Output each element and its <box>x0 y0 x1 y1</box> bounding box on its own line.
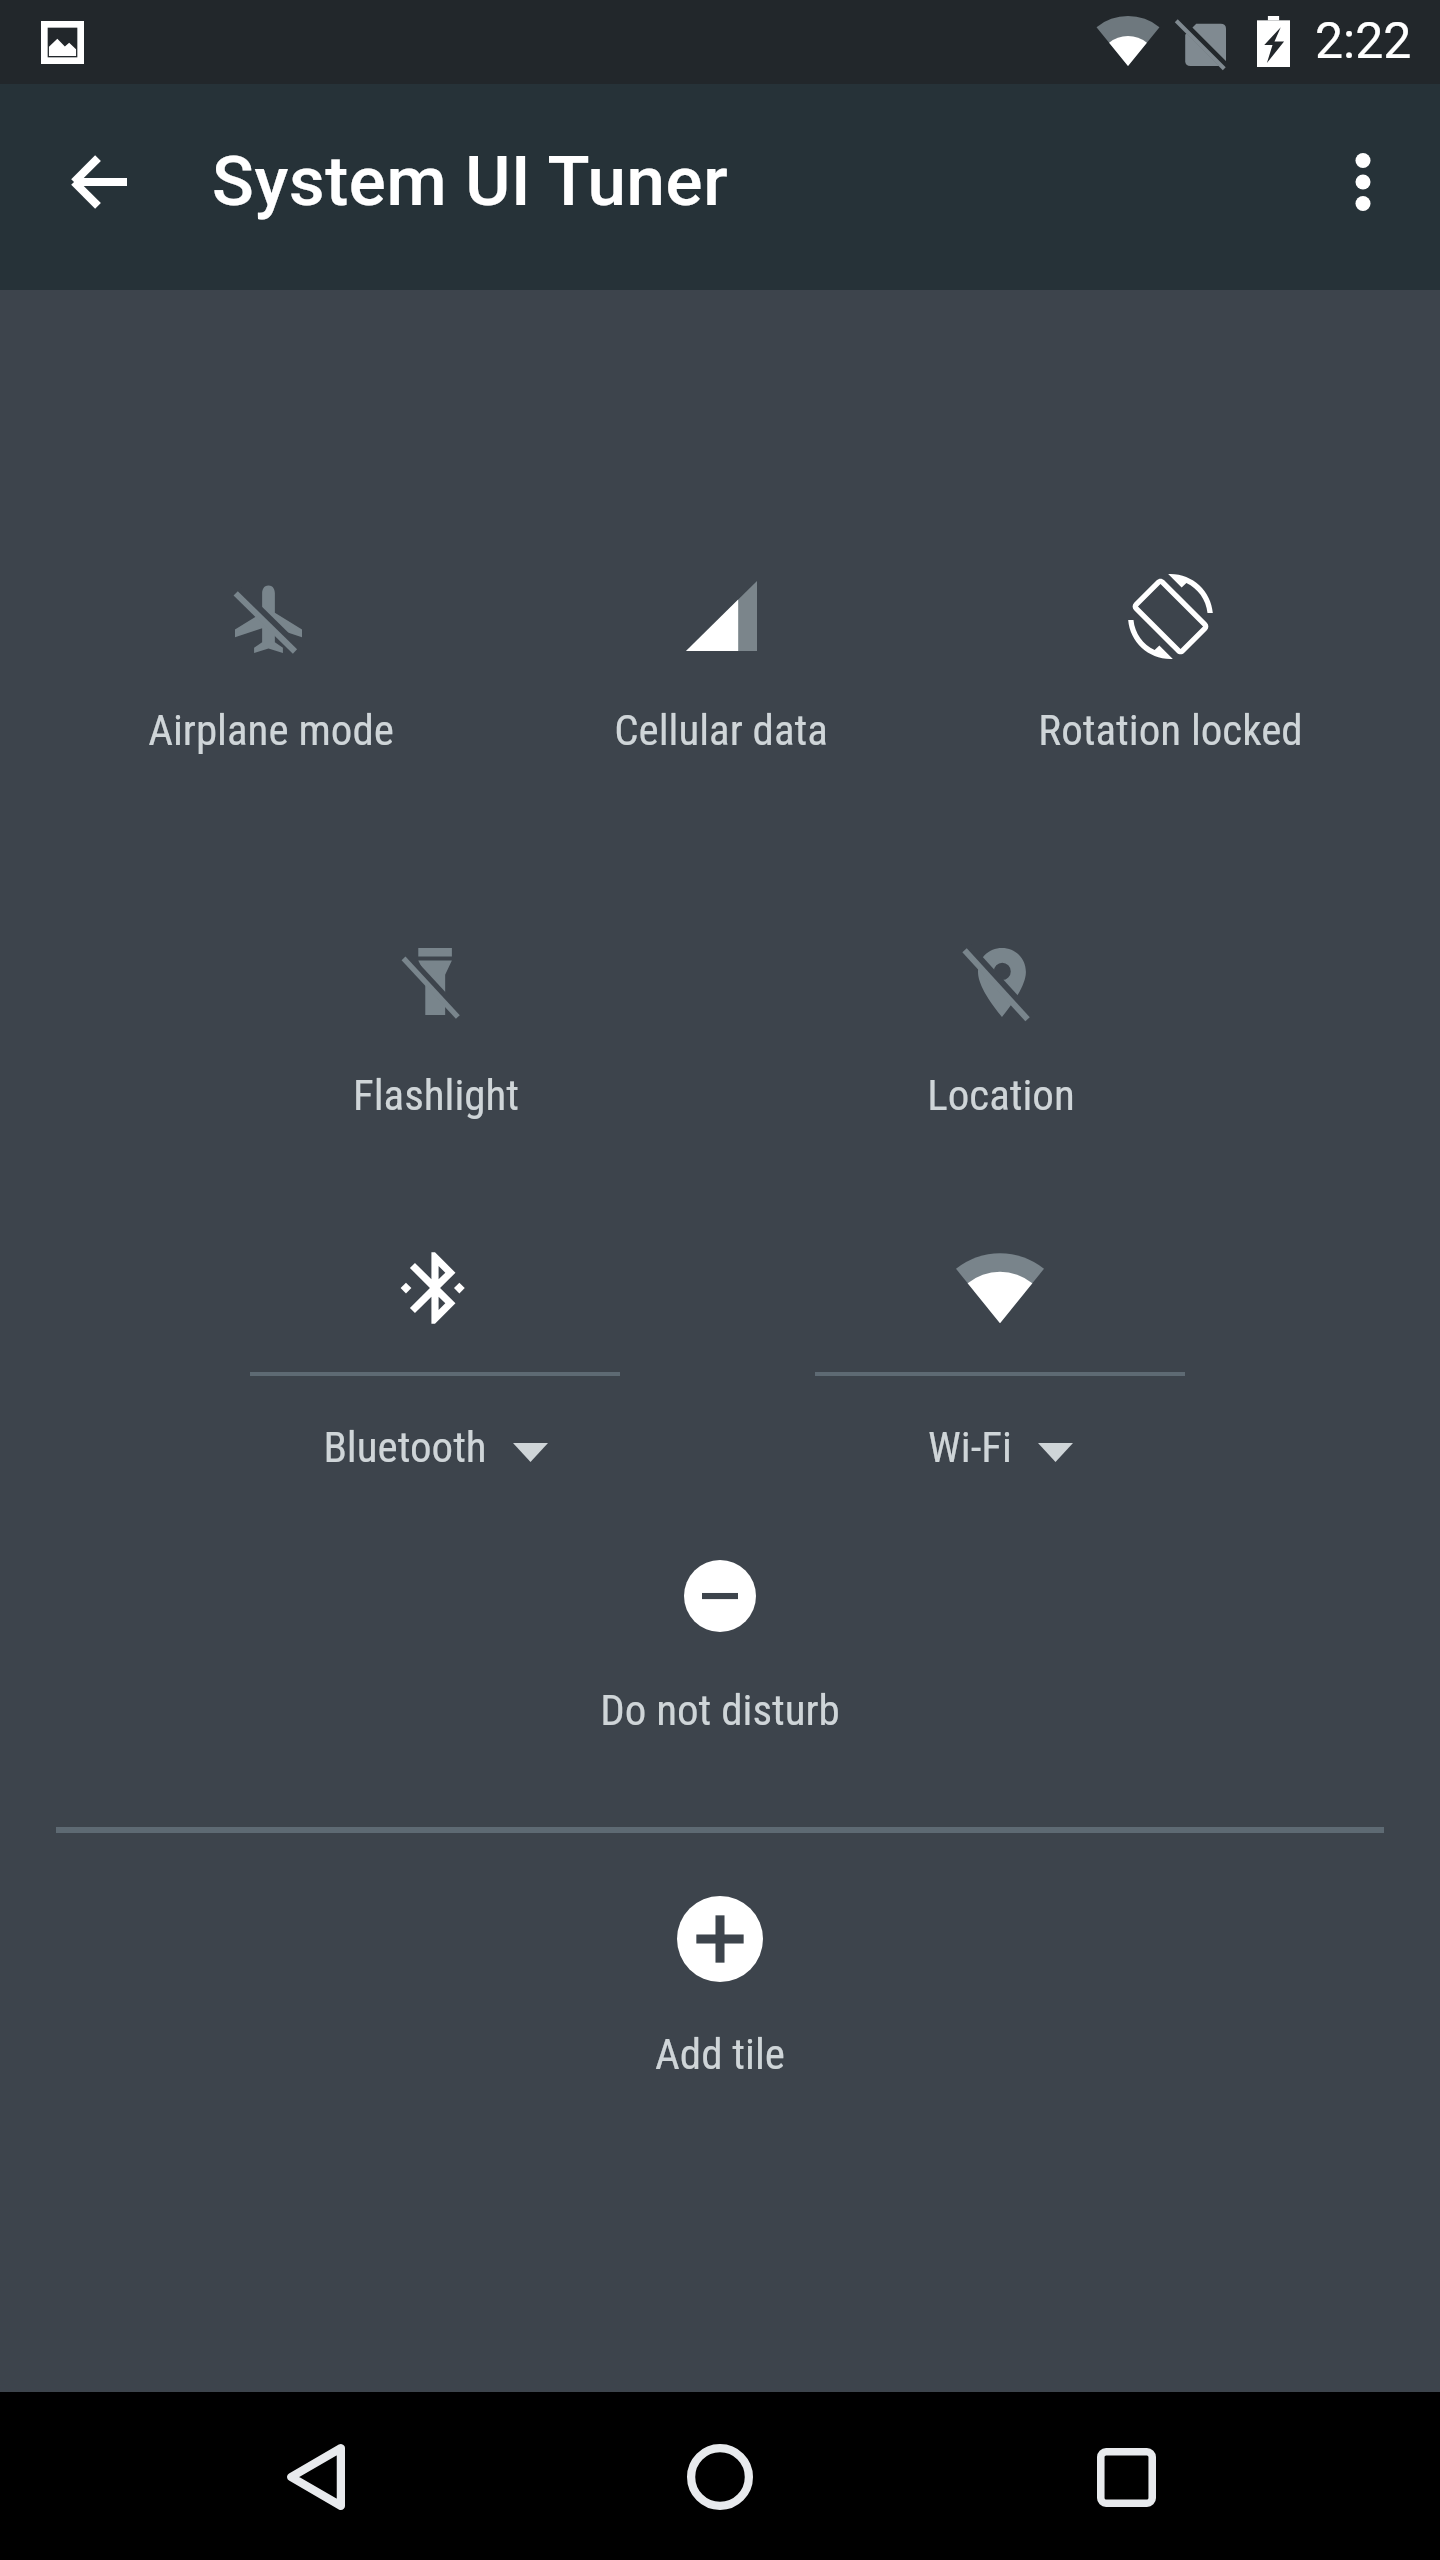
button[interactable]: Do not disturb <box>540 1545 900 1755</box>
button[interactable]: Wi-Fi <box>800 1228 1200 1508</box>
staticText: Cellular data <box>614 705 828 755</box>
button[interactable]: Navigate up <box>42 126 154 238</box>
staticText: Wi-Fi <box>928 1422 1012 1472</box>
button[interactable]: Home <box>630 2392 810 2560</box>
staticText: Flashlight <box>353 1070 519 1120</box>
staticText: Do not disturb <box>600 1685 840 1735</box>
staticText: Location <box>927 1070 1075 1120</box>
button[interactable]: Add tile <box>540 1880 900 2100</box>
button[interactable]: Airplane mode <box>71 528 471 748</box>
button[interactable]: More options <box>1308 127 1418 237</box>
staticText: Airplane mode <box>148 705 394 755</box>
staticText: System UI Tuner <box>212 141 729 222</box>
button[interactable]: Location <box>801 892 1201 1112</box>
button[interactable]: Flashlight <box>236 891 636 1111</box>
staticText: 2:22 <box>1315 12 1412 71</box>
button[interactable]: Back <box>226 2392 406 2560</box>
button[interactable]: Rotation locked <box>970 526 1370 746</box>
staticText: Rotation locked <box>1038 705 1303 755</box>
staticText: Add tile <box>655 2029 785 2079</box>
button[interactable]: Cellular data <box>521 526 921 746</box>
button[interactable]: Bluetooth <box>235 1228 635 1508</box>
button[interactable]: Recent apps <box>1036 2392 1216 2560</box>
staticText: Bluetooth <box>323 1422 487 1472</box>
